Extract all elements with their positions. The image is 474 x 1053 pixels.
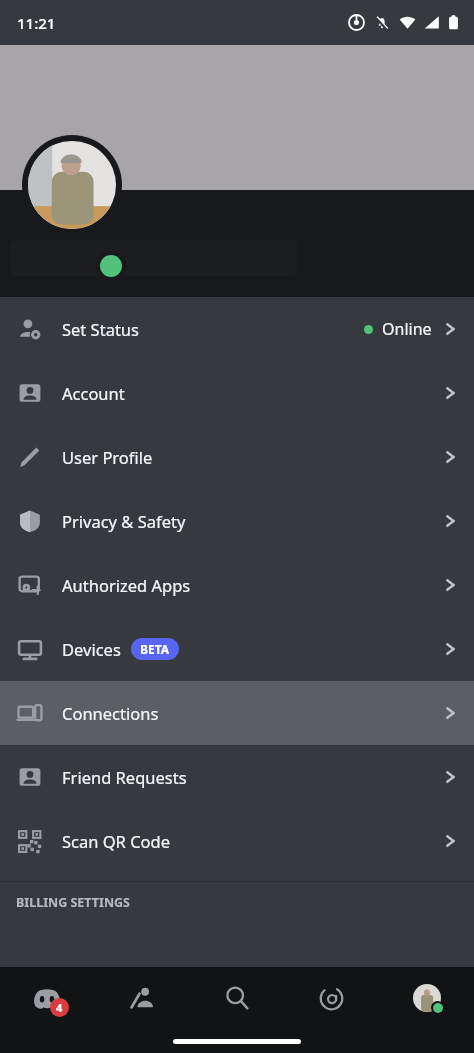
staticText: Authorized Apps xyxy=(62,574,191,596)
button[interactable]: Authorized Apps xyxy=(0,553,474,617)
button[interactable]: Privacy & Safety xyxy=(0,489,474,553)
staticText: 11:21 xyxy=(17,13,56,33)
button[interactable]: Home xyxy=(0,967,94,1029)
staticText: BETA xyxy=(140,641,170,657)
button[interactable]: Devices xyxy=(0,617,474,681)
button[interactable]: Mentions xyxy=(284,967,379,1029)
button[interactable]: Set Status xyxy=(0,297,474,361)
staticText: User Profile xyxy=(62,446,153,468)
staticText: Friend Requests xyxy=(62,766,187,788)
button[interactable]: Friend Requests xyxy=(0,745,474,809)
staticText: Set Status xyxy=(62,318,139,340)
staticText: Devices xyxy=(62,638,121,660)
staticText: BILLING SETTINGS xyxy=(16,894,131,911)
button[interactable]: Profile xyxy=(379,967,474,1029)
staticText: 4 xyxy=(56,1000,63,1015)
button[interactable]: Search xyxy=(189,967,284,1029)
staticText: Online xyxy=(382,318,432,340)
staticText: Privacy & Safety xyxy=(62,510,186,532)
staticText: Scan QR Code xyxy=(62,830,171,852)
staticText: Connections xyxy=(62,702,159,724)
button[interactable]: Account xyxy=(0,361,474,425)
button[interactable]: Friends xyxy=(94,967,189,1029)
button[interactable]: User Profile xyxy=(0,425,474,489)
button[interactable]: Scan QR Code xyxy=(0,809,474,873)
button[interactable]: Connections xyxy=(0,681,474,745)
staticText: Account xyxy=(62,382,125,404)
